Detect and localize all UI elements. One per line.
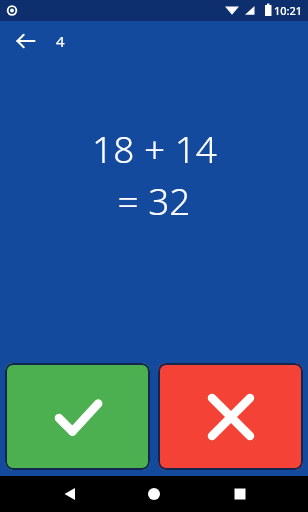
staticText: 4 [56,31,65,51]
button[interactable]: Home [136,476,172,512]
staticText: = 32 [117,175,191,225]
button[interactable]: Back [8,23,44,59]
button[interactable]: Recents [222,476,258,512]
button[interactable]: Back [52,476,88,512]
button[interactable]: Correct [5,363,150,470]
staticText: 10:21 [274,3,303,18]
button[interactable]: Wrong [158,363,303,470]
staticText: 18 + 14 [92,123,217,173]
